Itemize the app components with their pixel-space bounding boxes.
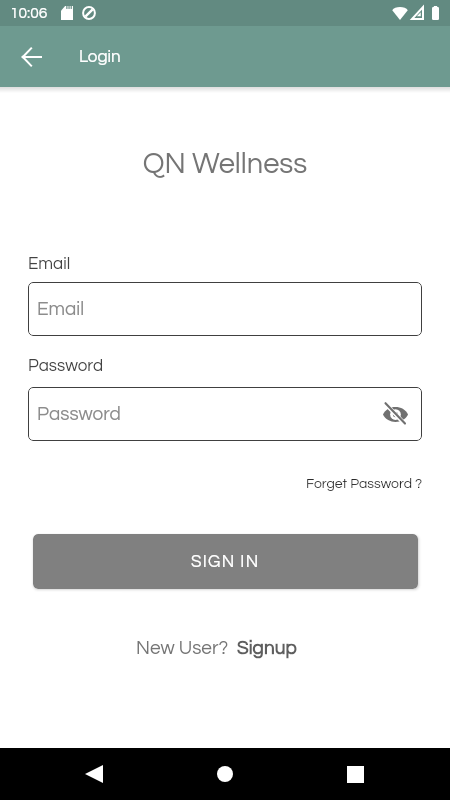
- button[interactable]: Email: [28, 282, 422, 336]
- staticText: SIGN IN: [191, 553, 260, 571]
- staticText: Login: [79, 48, 121, 66]
- staticText: Password: [37, 404, 121, 424]
- button[interactable]: Back: [10, 36, 52, 78]
- button[interactable]: SIGN IN: [33, 534, 418, 589]
- button[interactable]: Recents: [333, 752, 377, 796]
- staticText: 10:06: [10, 5, 48, 21]
- staticText: Email: [37, 299, 85, 319]
- button[interactable]: Password: [28, 387, 422, 441]
- staticText: New User?: [136, 638, 229, 658]
- button[interactable]: Forget Password ?: [306, 477, 423, 491]
- button[interactable]: Signup: [237, 638, 297, 658]
- button[interactable]: Show password: [379, 398, 411, 430]
- staticText: Email: [28, 255, 71, 273]
- staticText: QN Wellness: [0, 149, 450, 179]
- button[interactable]: Home: [203, 752, 247, 796]
- button[interactable]: Back: [72, 752, 116, 796]
- staticText: Password: [28, 357, 104, 375]
